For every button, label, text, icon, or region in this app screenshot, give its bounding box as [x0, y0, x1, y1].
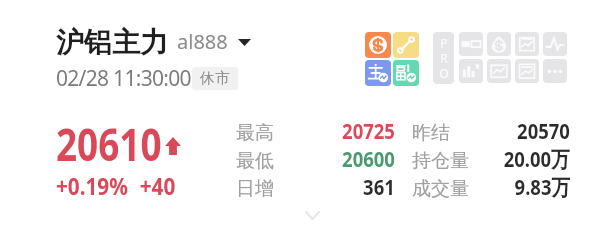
staticText: 20570: [517, 115, 570, 143]
button[interactable]: 持仓量: [412, 147, 570, 175]
staticText: 20725: [342, 115, 395, 143]
staticText: 最低: [236, 149, 274, 173]
staticText: 持仓量: [412, 149, 469, 173]
button[interactable]: Funds: [365, 32, 391, 58]
staticText: 20600: [342, 143, 395, 171]
button[interactable]: Main chart: [365, 60, 391, 86]
staticText: P R O: [439, 35, 449, 81]
staticText: 9.83万: [515, 171, 570, 199]
button[interactable]: Expand: [303, 209, 322, 222]
button[interactable]: Sub chart: [393, 60, 419, 86]
button[interactable]: Bars: [459, 59, 483, 83]
button[interactable]: Signal: [543, 32, 567, 56]
button[interactable]: 最低: [236, 147, 395, 175]
staticText: 最高: [236, 121, 274, 145]
button[interactable]: Layout: [459, 32, 483, 56]
staticText: 休市: [200, 69, 230, 88]
staticText: 20.00万: [504, 143, 570, 171]
staticText: 沪铝主力: [56, 25, 168, 60]
button[interactable]: 沪铝主力: [56, 25, 251, 60]
staticText: 昨结: [412, 121, 450, 145]
button[interactable]: Rising: [165, 137, 181, 155]
staticText: 成交量: [412, 177, 469, 201]
button[interactable]: 日增: [236, 175, 395, 203]
staticText: al888: [177, 28, 228, 55]
button[interactable]: Measure: [393, 32, 419, 58]
staticText: 日增: [236, 177, 274, 201]
button[interactable]: 最高: [236, 119, 395, 147]
button[interactable]: PRO: [433, 32, 454, 84]
button[interactable]: Report: [515, 32, 539, 56]
button[interactable]: 昨结: [412, 119, 570, 147]
button[interactable]: Price: [487, 32, 511, 56]
staticText: 361: [363, 171, 395, 199]
staticText: +0.19%: [56, 170, 128, 201]
staticText: 02/28 11:30:00: [56, 64, 191, 93]
staticText: +40: [140, 170, 176, 201]
button[interactable]: 成交量: [412, 175, 570, 203]
staticText: 20610: [56, 113, 162, 174]
button[interactable]: Trend: [487, 59, 511, 83]
button[interactable]: More: [543, 59, 567, 83]
button[interactable]: Notes: [515, 59, 539, 83]
button[interactable]: 休市: [192, 67, 238, 90]
